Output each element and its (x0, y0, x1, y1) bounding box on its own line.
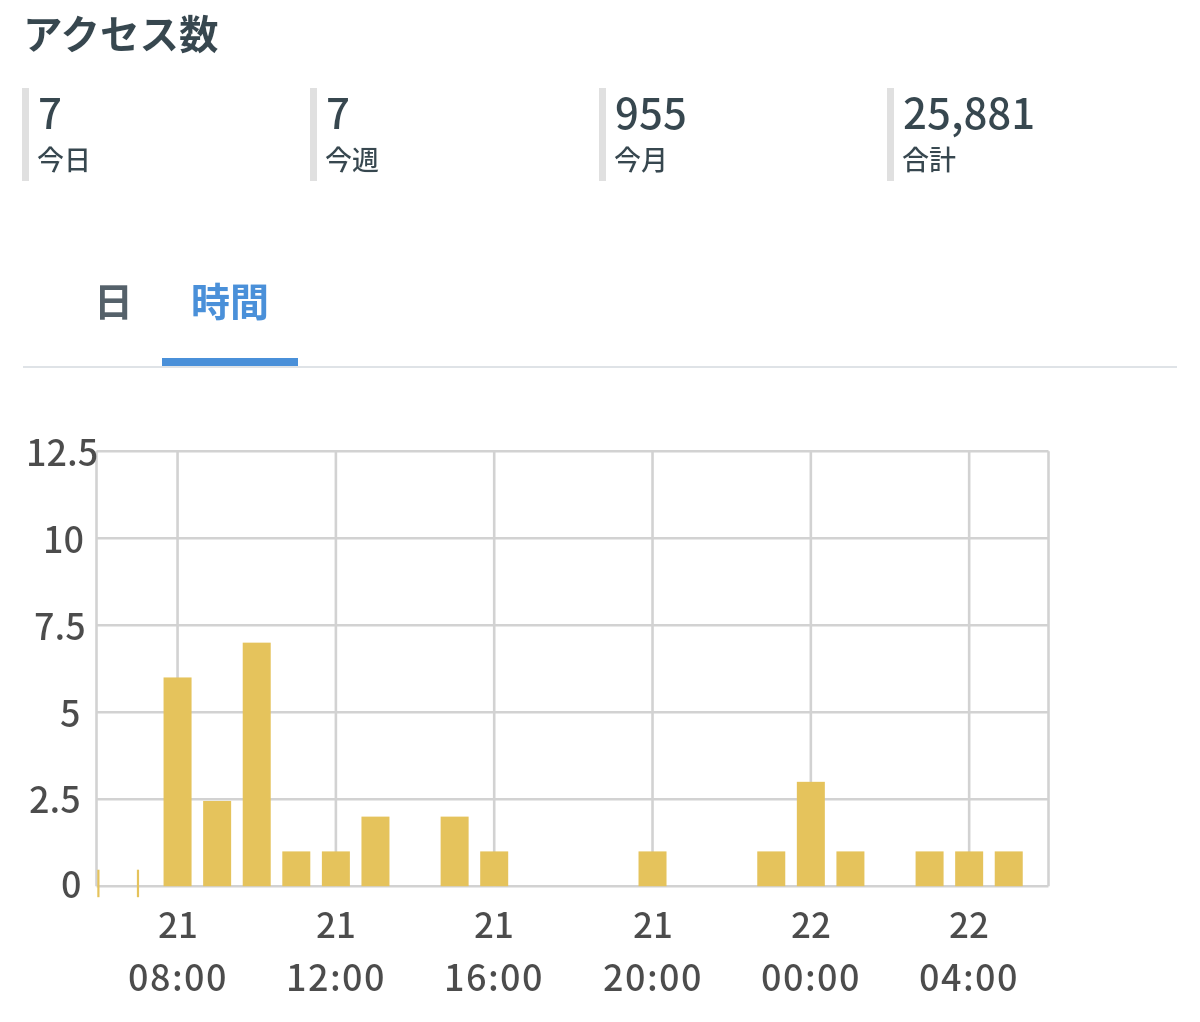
staticText: 今週 (325, 139, 379, 178)
staticText: 20:00 (603, 949, 703, 1001)
staticText: 04:00 (919, 949, 1019, 1001)
staticText: 08:00 (128, 949, 228, 1001)
staticText: 25,881 (903, 80, 1036, 141)
staticText: 12.5 (26, 424, 99, 476)
staticText: 7.5 (34, 598, 86, 650)
staticText: 12:00 (286, 949, 386, 1001)
staticText: 2.5 (29, 771, 81, 823)
staticText: 00:00 (761, 949, 861, 1001)
staticText: 21 (158, 897, 198, 948)
staticText: 22 (791, 897, 831, 948)
button[interactable]: 7 (22, 88, 310, 181)
other: Hourly access chart (0, 0, 1200, 1022)
staticText: 7 (38, 80, 62, 141)
staticText: 日 (94, 271, 134, 327)
staticText: 今月 (614, 139, 668, 178)
staticText: 22 (949, 897, 989, 948)
button[interactable]: 日 (65, 255, 162, 367)
staticText: 合計 (902, 139, 956, 178)
staticText: アクセス数 (23, 3, 219, 60)
staticText: 21 (474, 897, 514, 948)
staticText: 時間 (191, 271, 270, 327)
staticText: 21 (316, 897, 356, 948)
staticText: 7 (326, 80, 350, 141)
staticText: 10 (43, 511, 85, 563)
button[interactable]: 25,881 (887, 88, 1175, 181)
staticText: 16:00 (444, 949, 544, 1001)
staticText: 今日 (37, 139, 91, 178)
staticText: 955 (615, 80, 687, 141)
button[interactable]: 時間 (162, 255, 298, 367)
button[interactable]: 955 (599, 88, 887, 181)
staticText: 0 (61, 856, 82, 908)
staticText: 5 (60, 685, 81, 737)
button[interactable]: 7 (310, 88, 598, 181)
staticText: 21 (633, 897, 673, 948)
